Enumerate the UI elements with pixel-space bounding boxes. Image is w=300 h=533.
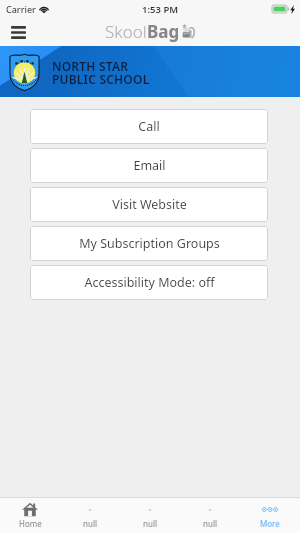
staticText: null — [83, 518, 98, 529]
staticText: null — [203, 518, 218, 529]
staticText: Email — [133, 157, 166, 174]
staticText: Call — [138, 118, 160, 135]
button[interactable]: Menu — [5, 19, 32, 46]
staticText: null — [143, 518, 158, 529]
button[interactable]: My Subscription Groups — [30, 226, 268, 261]
button[interactable]: Email — [30, 148, 268, 183]
staticText: Skool — [105, 20, 147, 43]
button[interactable]: null — [60, 498, 120, 533]
staticText: 1:53 PM — [142, 3, 179, 16]
button[interactable]: null — [180, 498, 240, 533]
staticText: Accessibility Mode: off — [84, 274, 215, 291]
staticText: More — [260, 518, 280, 529]
staticText: Visit Website — [112, 196, 187, 213]
button[interactable]: More — [240, 498, 300, 533]
button[interactable]: Call — [30, 109, 268, 144]
button[interactable]: Visit Website — [30, 187, 268, 222]
staticText: My Subscription Groups — [79, 235, 220, 252]
button[interactable]: Accessibility Mode: off — [30, 265, 268, 300]
button[interactable]: Home — [0, 498, 60, 533]
staticText: NORTH STAR PUBLIC SCHOOL — [52, 58, 150, 88]
staticText: Bag — [147, 20, 180, 43]
button[interactable]: null — [120, 498, 180, 533]
staticText: Home — [19, 518, 42, 529]
staticText: Carrier — [6, 3, 36, 15]
